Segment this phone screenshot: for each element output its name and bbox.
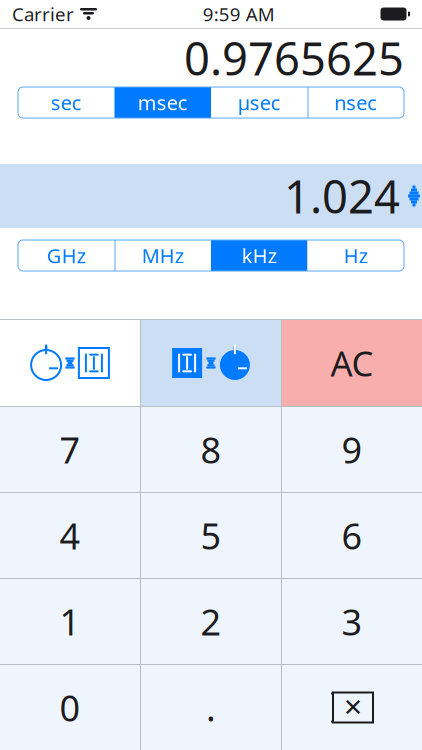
staticText: ✕ [343,694,363,721]
staticText: Hz [344,242,368,269]
button[interactable]: Delete [282,665,422,750]
button[interactable]: 8 [141,407,281,492]
staticText: 0.9765625 [184,28,404,88]
staticText: 1.024 [284,166,400,226]
staticText: . [206,684,216,731]
button[interactable]: Convert frequency to time [141,320,281,406]
staticText: AC [330,340,373,386]
staticText: Carrier [12,2,74,26]
button[interactable]: . [141,665,281,750]
button[interactable]: nsec [307,87,404,118]
button[interactable]: msec [114,87,211,118]
button[interactable]: 3 [282,579,422,664]
button[interactable]: 7 [0,407,140,492]
staticText: 0 [59,684,80,731]
staticText: 6 [341,512,362,559]
staticText: nsec [334,89,377,116]
staticText: µsec [238,89,281,116]
button[interactable]: 9 [282,407,422,492]
button[interactable]: 0 [0,665,140,750]
button[interactable]: kHz [211,240,307,271]
staticText: kHz [242,242,277,269]
staticText: GHz [47,242,86,269]
button[interactable]: 4 [0,493,140,578]
button[interactable]: MHz [114,240,211,271]
staticText: MHz [142,242,184,269]
button[interactable]: 6 [282,493,422,578]
staticText: 4 [59,512,80,559]
button[interactable]: GHz [18,240,114,271]
staticText: 2 [200,598,221,645]
staticText: 3 [341,598,362,645]
button[interactable]: Convert time to frequency [0,320,140,406]
button[interactable]: 5 [141,493,281,578]
button[interactable]: 1 [0,579,140,664]
staticText: 5 [200,512,221,559]
staticText: sec [51,89,82,116]
staticText: msec [138,89,188,116]
staticText: 8 [200,426,221,473]
staticText: 9 [341,426,362,473]
staticText: 7 [59,426,80,473]
button[interactable]: 2 [141,579,281,664]
button[interactable]: µsec [211,87,307,118]
staticText: 1 [59,598,80,645]
staticText: 9:59 AM [203,2,275,26]
button[interactable]: AC [282,320,422,406]
button[interactable]: sec [18,87,114,118]
button[interactable]: Hz [307,240,404,271]
